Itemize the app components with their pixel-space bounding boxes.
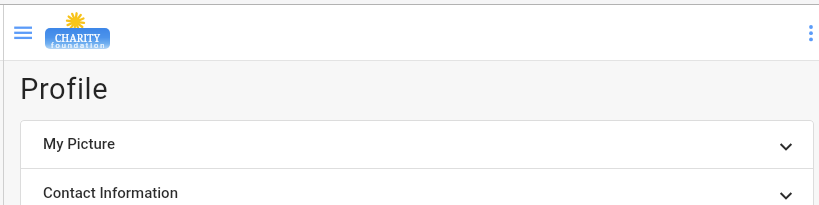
button[interactable]: Open navigation menu bbox=[6, 16, 40, 49]
button[interactable]: More options bbox=[797, 16, 819, 49]
button[interactable]: Contact Information bbox=[20, 169, 814, 205]
staticText: CHARITY bbox=[55, 31, 101, 45]
staticText: My Picture bbox=[43, 135, 777, 153]
staticText: foundation bbox=[51, 41, 107, 49]
staticText: Contact Information bbox=[43, 184, 777, 202]
button[interactable]: My Picture bbox=[20, 120, 814, 168]
staticText: Profile bbox=[20, 72, 109, 106]
